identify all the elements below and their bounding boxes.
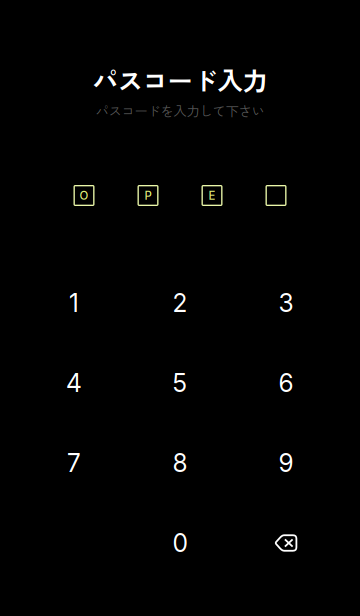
button[interactable]: 1 xyxy=(21,263,127,343)
button[interactable]: 5 xyxy=(127,343,233,423)
staticText: パスコードを入力して下さい xyxy=(95,101,264,120)
button[interactable]: 0 xyxy=(127,503,233,583)
button[interactable]: 9 xyxy=(233,423,339,503)
staticText: 1 xyxy=(69,288,79,318)
staticText: 2 xyxy=(172,288,187,318)
staticText: 4 xyxy=(66,368,82,398)
button[interactable]: 2 xyxy=(127,263,233,343)
staticText: 9 xyxy=(278,448,293,478)
button[interactable]: 6 xyxy=(233,343,339,423)
staticText: パスコード入力 xyxy=(92,61,267,98)
staticText: 7 xyxy=(67,448,81,478)
staticText: O xyxy=(79,189,88,202)
button[interactable]: 4 xyxy=(21,343,127,423)
staticText: E xyxy=(208,189,215,202)
button[interactable]: 7 xyxy=(21,423,127,503)
button[interactable]: Delete xyxy=(233,503,339,583)
staticText: 8 xyxy=(172,448,187,478)
staticText: P xyxy=(144,189,151,202)
button[interactable]: 8 xyxy=(127,423,233,503)
button[interactable]: 3 xyxy=(233,263,339,343)
staticText: 0 xyxy=(172,528,187,558)
staticText: 5 xyxy=(172,368,187,398)
staticText: 3 xyxy=(278,288,293,318)
staticText: 6 xyxy=(278,368,293,398)
